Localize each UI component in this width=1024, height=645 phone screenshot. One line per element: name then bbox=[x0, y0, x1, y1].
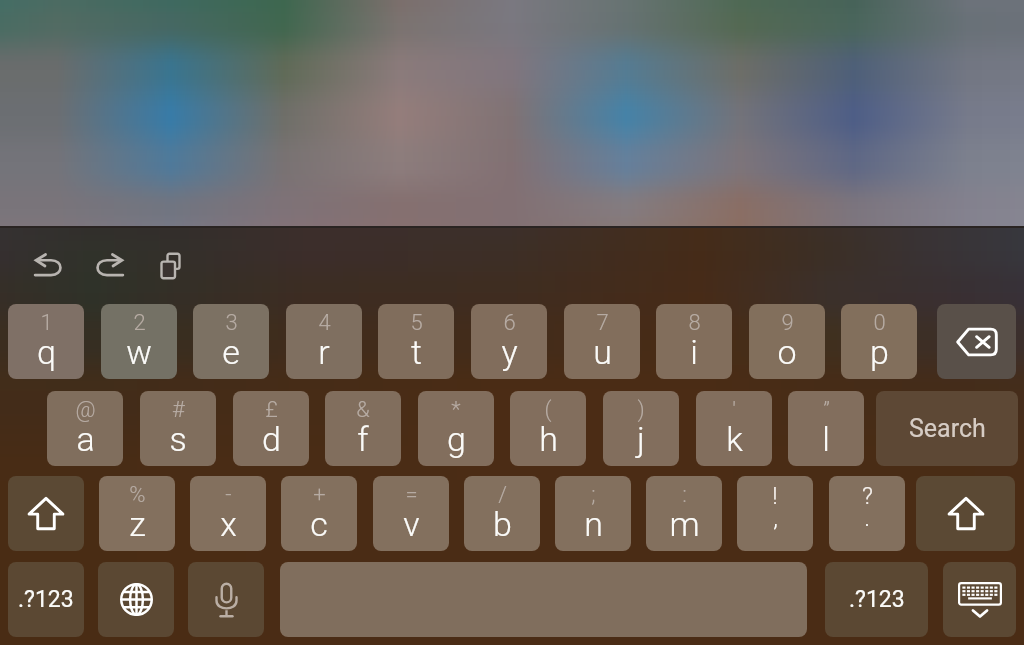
button[interactable]: ” bbox=[788, 391, 864, 466]
staticText: n bbox=[584, 504, 603, 544]
button[interactable]: / bbox=[464, 476, 540, 551]
button[interactable]: .?123 bbox=[8, 562, 84, 637]
staticText: Search bbox=[909, 414, 986, 443]
button[interactable]: 3 bbox=[193, 304, 269, 379]
button[interactable]: 5 bbox=[378, 304, 454, 379]
staticText: 4 bbox=[318, 310, 331, 336]
button[interactable]: 0 bbox=[841, 304, 917, 379]
staticText: ! bbox=[772, 482, 778, 510]
staticText: x bbox=[220, 504, 237, 544]
button[interactable]: Paste bbox=[149, 249, 193, 283]
staticText: q bbox=[37, 332, 56, 372]
staticText: : bbox=[682, 482, 687, 508]
staticText: + bbox=[313, 482, 326, 508]
staticText: @ bbox=[75, 397, 96, 423]
button[interactable]: : bbox=[646, 476, 722, 551]
button[interactable]: Undo bbox=[26, 249, 70, 283]
staticText: - bbox=[225, 482, 232, 508]
button[interactable]: ' bbox=[696, 391, 772, 466]
staticText: % bbox=[129, 482, 146, 508]
button[interactable]: .?123 bbox=[825, 562, 928, 637]
staticText: 0 bbox=[873, 310, 886, 336]
staticText: m bbox=[669, 504, 700, 544]
staticText: a bbox=[76, 419, 95, 459]
staticText: l bbox=[822, 419, 830, 459]
staticText: e bbox=[222, 332, 240, 372]
button[interactable]: ) bbox=[603, 391, 679, 466]
staticText: k bbox=[726, 419, 743, 459]
button[interactable]: Shift bbox=[916, 476, 1015, 551]
staticText: f bbox=[357, 419, 369, 459]
staticText: 8 bbox=[688, 310, 701, 336]
button[interactable]: 2 bbox=[101, 304, 177, 379]
staticText: ” bbox=[823, 397, 830, 423]
staticText: i bbox=[690, 332, 698, 372]
button[interactable]: + bbox=[281, 476, 357, 551]
staticText: & bbox=[356, 397, 370, 423]
button[interactable]: Backspace bbox=[937, 304, 1016, 379]
staticText: j bbox=[637, 419, 645, 459]
staticText: y bbox=[501, 332, 518, 372]
button[interactable]: 6 bbox=[471, 304, 547, 379]
staticText: , bbox=[773, 504, 778, 532]
button[interactable]: - bbox=[190, 476, 266, 551]
staticText: t bbox=[411, 332, 422, 372]
staticText: / bbox=[498, 482, 507, 508]
staticText: 5 bbox=[410, 310, 423, 336]
staticText: ; bbox=[591, 482, 596, 508]
staticText: d bbox=[262, 419, 281, 459]
staticText: o bbox=[777, 332, 797, 372]
button[interactable]: Hide keyboard bbox=[943, 562, 1016, 637]
button[interactable]: @ bbox=[47, 391, 123, 466]
button[interactable]: = bbox=[373, 476, 449, 551]
button[interactable]: Search bbox=[876, 391, 1018, 466]
button[interactable]: # bbox=[140, 391, 216, 466]
button[interactable]: 7 bbox=[564, 304, 640, 379]
button[interactable]: Voice input bbox=[188, 562, 264, 637]
staticText: ? bbox=[862, 482, 873, 510]
staticText: = bbox=[405, 482, 418, 508]
button[interactable]: Change keyboard bbox=[98, 562, 174, 637]
button[interactable]: 1 bbox=[8, 304, 84, 379]
button[interactable]: ( bbox=[510, 391, 586, 466]
staticText: z bbox=[129, 504, 146, 544]
staticText: g bbox=[447, 419, 466, 459]
staticText: .?123 bbox=[18, 586, 74, 613]
button[interactable]: ? bbox=[829, 476, 905, 551]
staticText: u bbox=[593, 332, 612, 372]
button[interactable]: 4 bbox=[286, 304, 362, 379]
staticText: 1 bbox=[40, 310, 53, 336]
button[interactable]: % bbox=[99, 476, 175, 551]
button[interactable]: Shift bbox=[8, 476, 84, 551]
staticText: 2 bbox=[133, 310, 146, 336]
staticText: ) bbox=[637, 397, 645, 423]
staticText: p bbox=[870, 332, 889, 372]
staticText: 7 bbox=[596, 310, 609, 336]
staticText: h bbox=[539, 419, 558, 459]
button[interactable]: ; bbox=[555, 476, 631, 551]
staticText: w bbox=[126, 332, 152, 372]
button[interactable]: ! bbox=[737, 476, 813, 551]
button[interactable]: Redo bbox=[88, 249, 132, 283]
staticText: b bbox=[493, 504, 512, 544]
staticText: . bbox=[864, 504, 870, 532]
button[interactable]: & bbox=[325, 391, 401, 466]
button[interactable]: * bbox=[418, 391, 494, 466]
staticText: .?123 bbox=[849, 586, 905, 613]
staticText: v bbox=[403, 504, 420, 544]
button[interactable]: 9 bbox=[749, 304, 825, 379]
staticText: 3 bbox=[225, 310, 238, 336]
staticText: * bbox=[451, 397, 461, 423]
staticText: £ bbox=[265, 397, 278, 423]
staticText: s bbox=[169, 419, 187, 459]
staticText: 9 bbox=[781, 310, 794, 336]
staticText: ( bbox=[544, 397, 552, 423]
staticText: # bbox=[172, 397, 185, 423]
staticText: ' bbox=[732, 397, 736, 423]
staticText: 6 bbox=[503, 310, 516, 336]
staticText: r bbox=[318, 332, 330, 372]
button[interactable]: 8 bbox=[656, 304, 732, 379]
button[interactable]: £ bbox=[233, 391, 309, 466]
staticText: c bbox=[310, 504, 328, 544]
